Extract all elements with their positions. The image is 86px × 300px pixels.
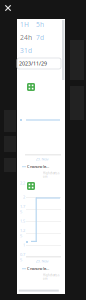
staticText: 1.25 xyxy=(20,228,25,238)
staticText: 1H xyxy=(20,20,29,29)
staticText: Спальня (в… xyxy=(27,266,49,271)
staticText: Highcharts.com xyxy=(43,171,60,179)
staticText: 7d xyxy=(36,33,44,42)
staticText: 0.75 xyxy=(20,252,25,262)
button[interactable]: 1H xyxy=(20,21,38,28)
staticText: 1 xyxy=(23,242,25,248)
staticText: Спальня (в… xyxy=(27,164,49,169)
button[interactable]: 5h xyxy=(36,21,54,28)
button[interactable]: 31d xyxy=(20,47,38,54)
staticText: 5h xyxy=(36,20,44,29)
staticText: 1.75 xyxy=(20,204,25,214)
button[interactable]: Close xyxy=(0,0,16,16)
staticText: Highcharts.com xyxy=(43,273,60,281)
button[interactable]: 2023/11/29 xyxy=(17,58,61,69)
button[interactable]: Chart menu xyxy=(27,182,35,190)
staticText: 2023/11/29 xyxy=(19,60,47,67)
staticText: 2.2 xyxy=(20,180,25,186)
staticText: 31d xyxy=(20,46,32,55)
staticText: 1.5 xyxy=(20,218,25,224)
staticText: 29. Nov xyxy=(35,156,48,162)
button[interactable]: Chart menu xyxy=(27,83,35,91)
button[interactable]: 24h xyxy=(20,34,38,41)
staticText: 24h xyxy=(20,33,32,42)
staticText: 29. Nov xyxy=(35,258,48,264)
staticText: 2 xyxy=(23,194,25,200)
button[interactable]: 7d xyxy=(36,34,54,41)
